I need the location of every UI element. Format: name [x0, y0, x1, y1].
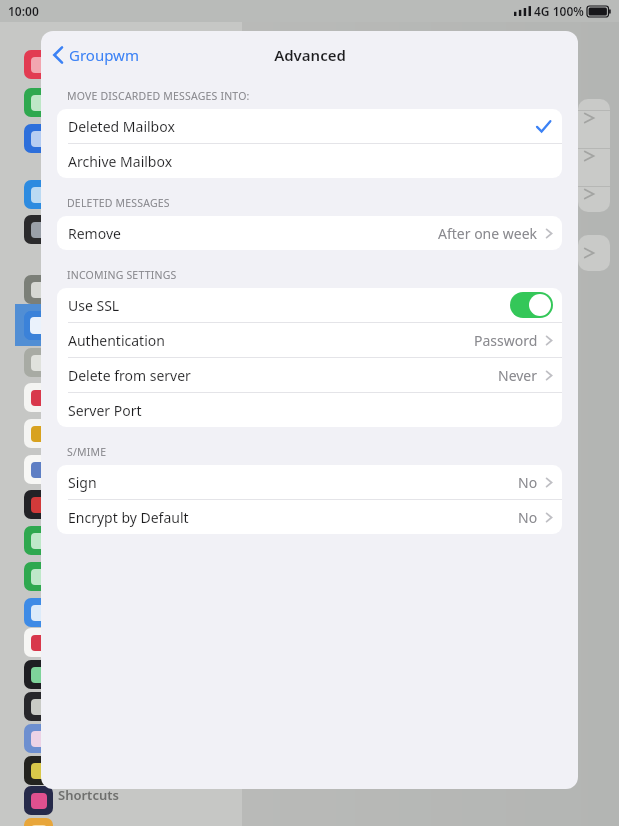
staticText: Authentication	[68, 331, 165, 350]
button[interactable]: Use SSL toggle, on	[510, 292, 553, 318]
button[interactable]: Use SSL	[57, 288, 562, 322]
staticText: 10:00	[8, 3, 39, 19]
other: Selected	[534, 117, 553, 136]
staticText: Encrypt by Default	[68, 508, 189, 527]
staticText: Mail	[273, 30, 303, 49]
staticText: Password	[474, 331, 538, 350]
button[interactable]: Remove	[57, 216, 562, 250]
staticText: Groupwm	[69, 45, 139, 65]
staticText: Settings	[96, 30, 160, 52]
button[interactable]: Sign	[57, 465, 562, 499]
staticText: Accounts	[393, 28, 461, 48]
staticText: No	[518, 473, 538, 492]
button[interactable]: Deleted Mailbox	[57, 109, 562, 143]
staticText: Sign	[68, 473, 97, 492]
button[interactable]: Archive Mailbox	[57, 144, 562, 178]
staticText: Remove	[68, 224, 121, 243]
staticText: Never	[498, 366, 538, 385]
staticText: INCOMING SETTINGS	[67, 268, 177, 282]
staticText: Advanced	[274, 45, 346, 65]
staticText: Shortcuts	[58, 786, 119, 804]
staticText: DELETED MESSAGES	[67, 196, 170, 210]
button[interactable]: Server Port	[57, 393, 562, 427]
staticText: 4G 100%	[534, 3, 584, 19]
staticText: Deleted Mailbox	[68, 117, 175, 136]
button[interactable]: Encrypt by Default	[57, 500, 562, 534]
button[interactable]: Delete from server	[57, 358, 562, 392]
button[interactable]: Groupwm	[49, 41, 143, 69]
staticText: Archive Mailbox	[68, 152, 173, 171]
button[interactable]: Authentication	[57, 323, 562, 357]
staticText: MOVE DISCARDED MESSAGES INTO:	[67, 89, 250, 103]
staticText: No	[518, 508, 538, 527]
staticText: S/MIME	[67, 445, 107, 459]
staticText: Server Port	[68, 401, 142, 420]
staticText: Delete from server	[68, 366, 191, 385]
staticText: After one week	[438, 224, 538, 243]
staticText: Use SSL	[68, 296, 120, 315]
